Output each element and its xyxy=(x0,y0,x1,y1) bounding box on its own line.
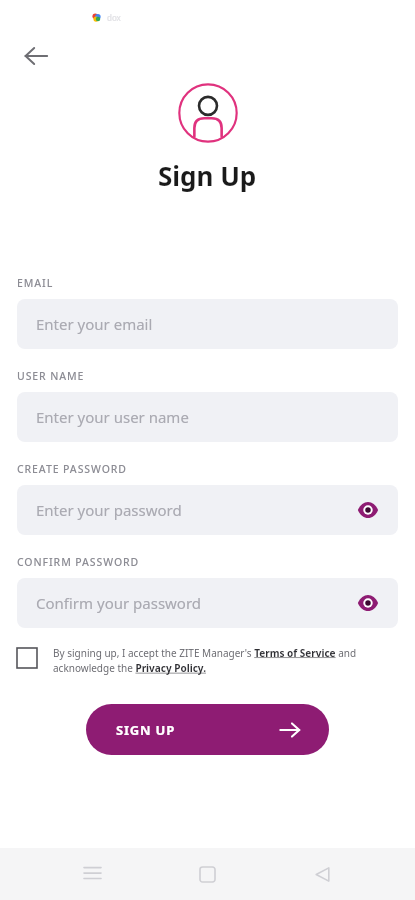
staticText: By signing up, I accept the ZITE Manager… xyxy=(53,646,398,675)
button[interactable]: Recents xyxy=(70,852,114,896)
button[interactable]: Back xyxy=(14,34,58,78)
button[interactable]: Enter your email xyxy=(17,299,398,349)
staticText: Confirm your password xyxy=(36,593,202,613)
button[interactable]: SIGN UP xyxy=(86,704,329,755)
staticText: Enter your user name xyxy=(36,407,189,427)
staticText: Enter your password xyxy=(36,500,182,520)
button[interactable]: Accept terms checkbox xyxy=(17,648,37,668)
staticText: CREATE PASSWORD xyxy=(17,462,127,476)
staticText: Sign Up xyxy=(158,158,257,193)
button[interactable]: Home xyxy=(185,852,229,896)
staticText: EMAIL xyxy=(17,276,54,290)
button[interactable]: Show password xyxy=(354,589,382,617)
button[interactable]: Enter your password xyxy=(17,485,398,535)
button[interactable]: Enter your user name xyxy=(17,392,398,442)
button[interactable]: By signing up, I accept the ZITE Manager… xyxy=(53,646,398,675)
staticText: Enter your email xyxy=(36,314,153,334)
button[interactable]: Show password xyxy=(354,496,382,524)
staticText: SIGN UP xyxy=(116,721,176,739)
button[interactable]: Confirm your password xyxy=(17,578,398,628)
staticText: CONFIRM PASSWORD xyxy=(17,555,140,569)
staticText: USER NAME xyxy=(17,369,85,383)
button[interactable]: Back xyxy=(300,852,344,896)
staticText: dox xyxy=(107,12,121,23)
